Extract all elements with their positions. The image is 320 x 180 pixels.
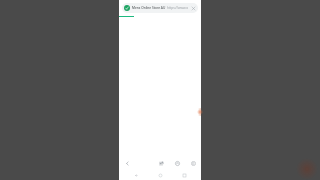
button[interactable]: Close <box>190 5 196 11</box>
button[interactable]: Tabs <box>187 157 199 170</box>
button[interactable]: Mens Online Store AU <box>122 3 198 13</box>
button[interactable]: Home <box>153 170 167 180</box>
staticText: https://www.onlinestore <box>167 6 190 10</box>
button[interactable]: Back <box>129 170 143 180</box>
button[interactable]: Recents <box>177 170 191 180</box>
button[interactable]: Filters <box>155 157 167 170</box>
button[interactable]: Home <box>171 157 183 170</box>
button[interactable]: Back <box>121 157 133 170</box>
staticText: Mens Online Store AU <box>132 6 166 10</box>
